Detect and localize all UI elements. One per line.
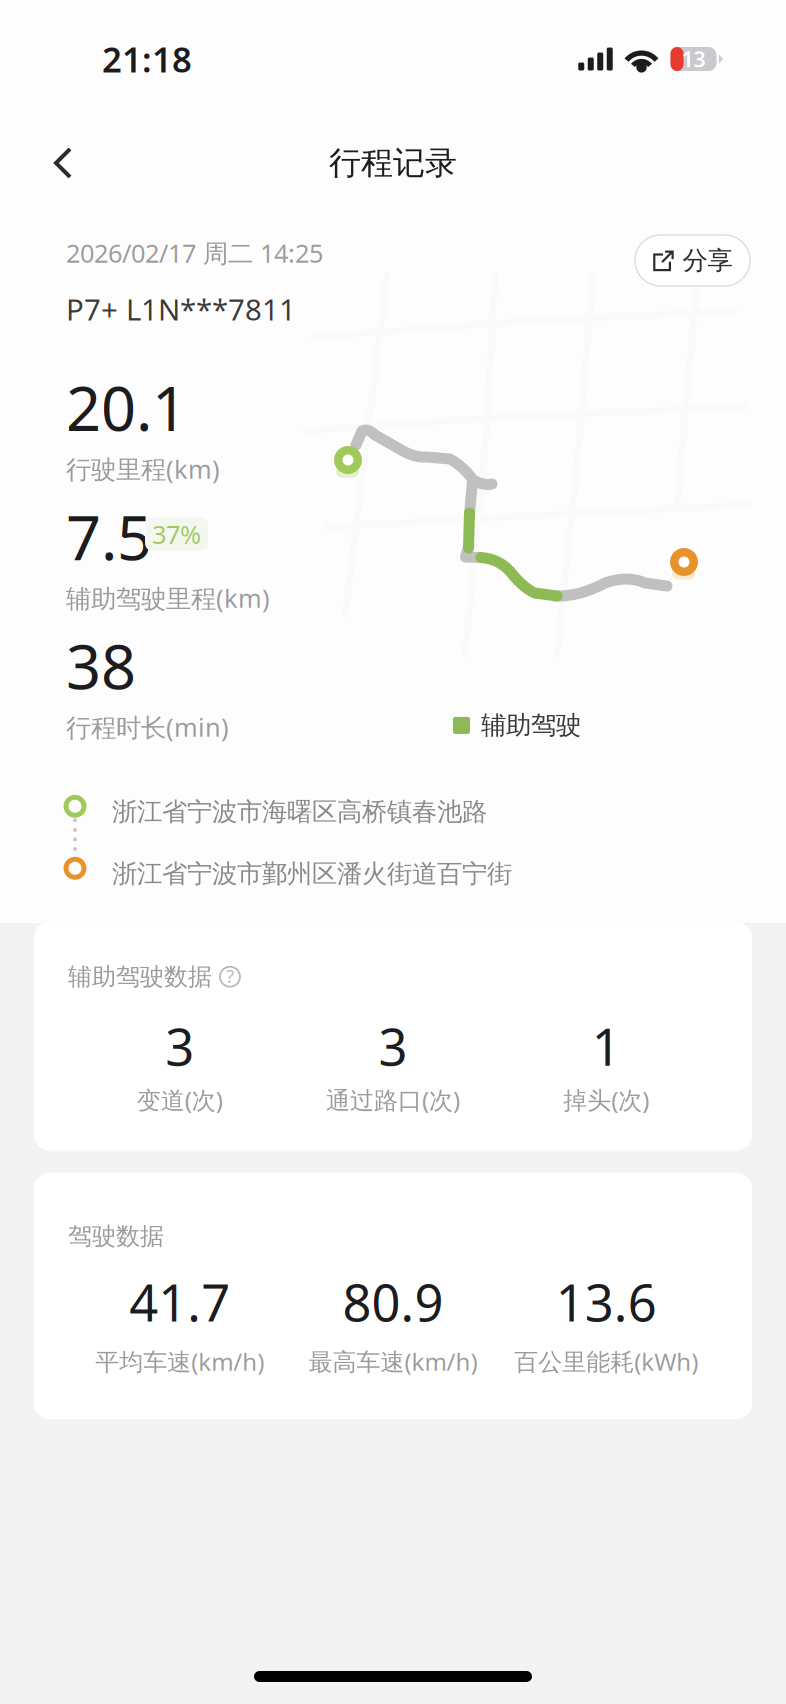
- staticText: 掉头(次): [563, 1084, 649, 1116]
- staticText: 最高车速(km/h): [308, 1345, 477, 1377]
- staticText: 37%: [152, 517, 201, 551]
- staticText: 辅助驾驶数据: [68, 962, 212, 991]
- staticText: 平均车速(km/h): [95, 1345, 264, 1377]
- staticText: 浙江省宁波市海曙区高桥镇春池路: [112, 796, 487, 827]
- staticText: 浙江省宁波市鄞州区潘火街道百宁街: [112, 858, 512, 889]
- staticText: 3: [165, 1012, 194, 1080]
- staticText: 21:18: [102, 36, 192, 82]
- staticText: 行驶里程(km): [66, 452, 220, 486]
- staticText: 13.6: [556, 1268, 657, 1335]
- staticText: 辅助驾驶里程(km): [66, 581, 270, 615]
- staticText: 7.5: [66, 496, 152, 577]
- staticText: 行程记录: [329, 143, 457, 183]
- staticText: 13: [681, 45, 705, 73]
- staticText: 41.7: [129, 1268, 230, 1335]
- staticText: 80.9: [342, 1268, 443, 1335]
- staticText: 变道(次): [137, 1084, 223, 1116]
- button[interactable]: Back: [32, 132, 94, 194]
- button[interactable]: 分享: [635, 235, 750, 286]
- staticText: 2026/02/17 周二 14:25: [66, 236, 323, 270]
- staticText: 行程时长(min): [66, 710, 229, 744]
- staticText: 3: [378, 1012, 407, 1080]
- staticText: 20.1: [66, 367, 187, 448]
- staticText: 百公里能耗(kWh): [514, 1345, 698, 1377]
- staticText: 分享: [682, 245, 732, 276]
- staticText: P7+ L1N***7811: [66, 290, 296, 329]
- staticText: ?: [226, 963, 234, 988]
- staticText: 辅助驾驶: [481, 710, 581, 741]
- staticText: 38: [66, 625, 136, 706]
- staticText: 1: [592, 1012, 621, 1080]
- staticText: 驾驶数据: [68, 1222, 164, 1251]
- staticText: 通过路口(次): [326, 1084, 460, 1116]
